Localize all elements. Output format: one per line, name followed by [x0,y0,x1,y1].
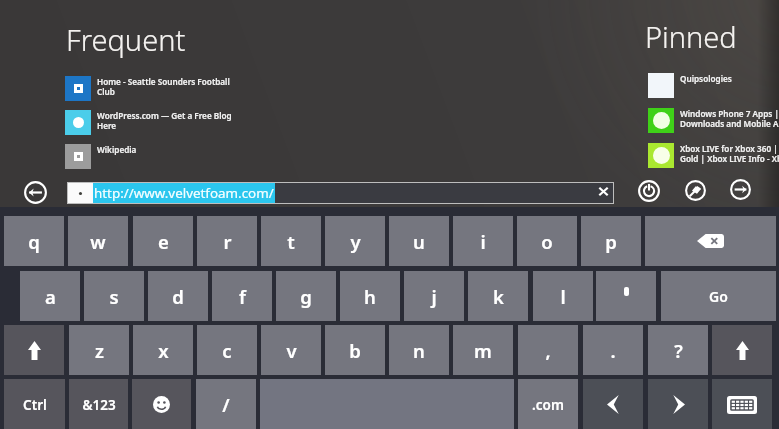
button[interactable]: Wikipedia [65,144,137,169]
staticText: Quipsologies [680,73,732,84]
staticText: h [364,284,376,309]
button[interactable]: e [133,216,193,266]
button[interactable]: w [68,216,128,266]
staticText: w [90,229,106,254]
button[interactable]: d [148,271,208,321]
staticText: k [493,284,504,309]
staticText: v [286,338,297,363]
button[interactable]: Quipsologies [648,73,732,98]
button[interactable]: emoji [132,379,191,429]
button[interactable]: s [84,271,144,321]
button[interactable]: b [325,325,385,375]
button[interactable]: .com [518,379,578,429]
staticText: x [158,338,169,363]
button[interactable]: n [389,325,449,375]
staticText: u [413,229,425,254]
button[interactable]: shift [4,325,64,375]
button[interactable]: k [468,271,528,321]
staticText: Xbox LIVE for Xbox 360 | X Gold | Xbox L… [680,143,779,164]
staticText: z [95,338,104,363]
button[interactable]: backspace [645,216,776,266]
button[interactable]: Xbox LIVE for Xbox 360 | X Gold | Xbox L… [648,143,779,168]
staticText: Home - Seattle Sounders Football Club [97,76,230,97]
staticText: y [350,229,361,254]
staticText: . [610,338,616,363]
staticText: / [222,392,230,417]
button[interactable]: z [69,325,129,375]
button[interactable]: j [404,271,464,321]
button[interactable]: Refresh [638,180,660,202]
button[interactable]: r [197,216,257,266]
button[interactable]: WordPress.com — Get a Free Blog Here [65,110,232,135]
button[interactable]: Home - Seattle Sounders Football Club [65,76,230,101]
button[interactable]: x [133,325,193,375]
staticText: a [45,284,56,309]
button[interactable]: o [517,216,577,266]
staticText: Ctrl [23,396,47,414]
button[interactable]: , [518,325,578,375]
button[interactable]: h [340,271,400,321]
button[interactable]: m [453,325,513,375]
staticText: Pinned [645,17,737,56]
staticText: t [287,229,295,254]
staticText: WordPress.com — Get a Free Blog Here [97,110,232,131]
staticText: Windows Phone 7 Apps | F Downloads and M… [680,108,779,129]
button[interactable]: shift [712,325,772,375]
staticText: &123 [82,396,116,414]
button[interactable]: c [197,325,257,375]
button[interactable]: Ctrl [4,379,65,429]
staticText: ? [674,338,683,363]
staticText: i [480,229,486,254]
staticText: s [109,284,119,309]
button[interactable]: g [276,271,336,321]
button[interactable]: kbd [712,379,772,429]
staticText: c [222,338,232,363]
staticText: d [172,284,184,309]
button[interactable]: Go [661,271,776,321]
staticText: f [239,284,246,309]
button[interactable]: . [583,325,643,375]
button[interactable]: f [212,271,272,321]
staticText: q [28,229,40,254]
button[interactable]: &123 [69,379,128,429]
button[interactable]: ? [648,325,708,375]
button[interactable]: l [533,271,593,321]
staticText: http://www.velvetfoam.com/ [94,184,274,202]
button[interactable]: q [4,216,64,266]
staticText: .com [532,396,564,414]
button[interactable]: Windows Phone 7 Apps | F Downloads and M… [648,108,779,133]
button[interactable]: u [389,216,449,266]
staticText: o [541,229,553,254]
button[interactable]: Back [24,181,47,204]
button[interactable]: y [325,216,385,266]
staticText: l [560,284,566,309]
staticText: b [349,338,361,363]
button[interactable]: http://www.velvetfoam.com/ [67,182,614,204]
button[interactable]: Pin [685,180,706,201]
staticText: m [474,338,492,363]
button[interactable]: Go [730,179,751,200]
button[interactable]: right [648,379,708,429]
staticText: Go [709,287,728,306]
staticText: n [413,338,425,363]
button[interactable]: apostrophe [596,271,656,321]
staticText: g [300,284,312,309]
staticText: Frequent [66,20,186,59]
button[interactable]: i [453,216,513,266]
staticText: p [605,229,617,254]
button[interactable]: p [581,216,641,266]
staticText: e [158,229,169,254]
staticText: , [545,338,551,363]
button[interactable]: / [196,379,256,429]
button[interactable]: Clear [596,184,611,199]
button[interactable]: left [583,379,643,429]
button[interactable]: v [261,325,321,375]
button[interactable]: t [261,216,321,266]
button[interactable]: a [20,271,80,321]
staticText: Wikipedia [97,144,137,155]
staticText: j [431,284,437,309]
staticText: r [223,229,232,254]
